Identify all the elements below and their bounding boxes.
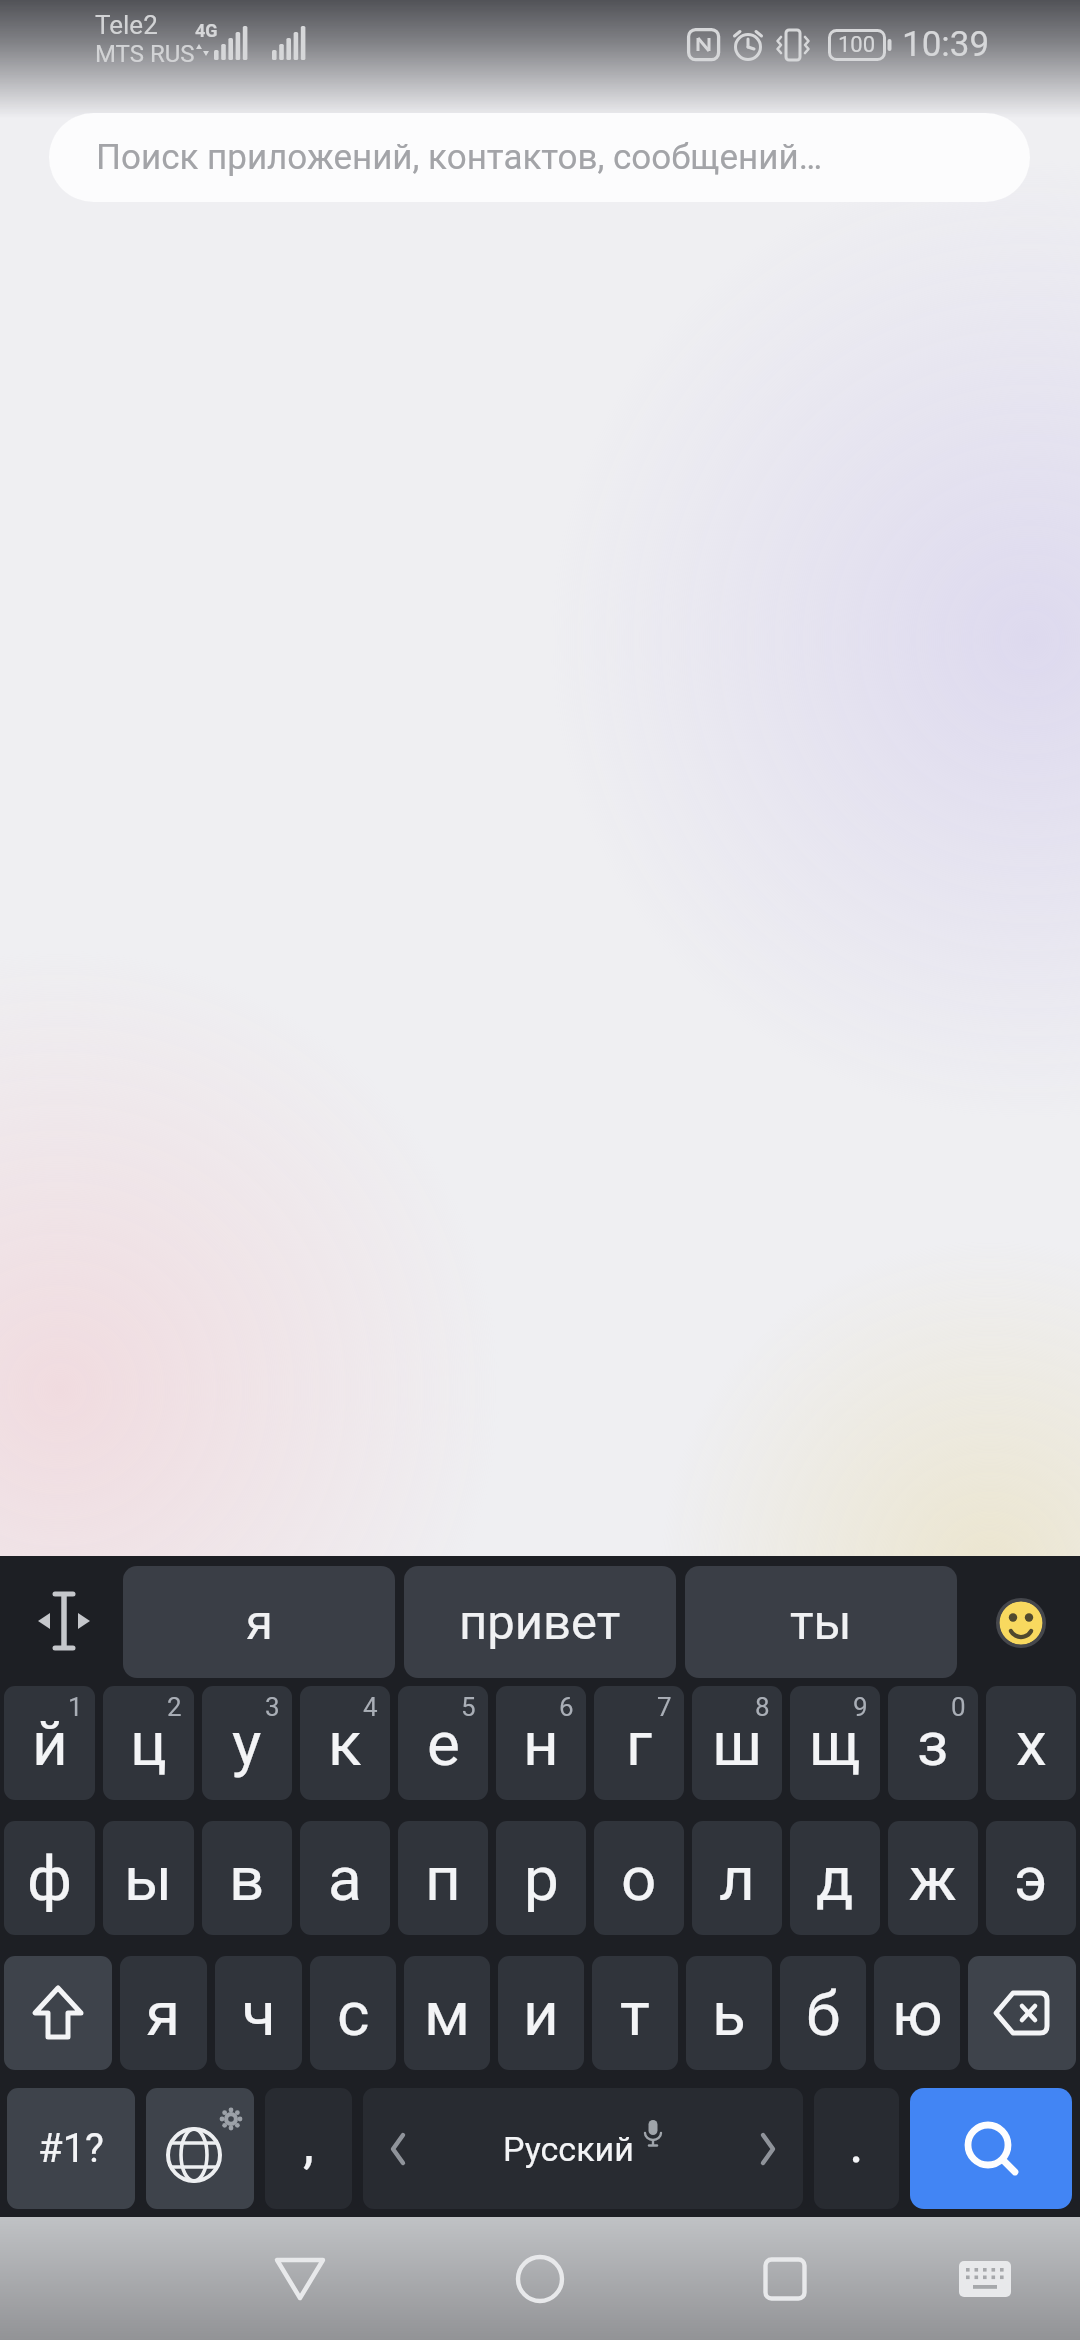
button[interactable]: е — [398, 1686, 488, 1800]
button[interactable]: Поиск приложений, контактов, сообщений… — [49, 113, 1030, 202]
staticText: . — [849, 2110, 864, 2176]
staticText: м — [424, 1977, 470, 2050]
staticText: 5 — [461, 1692, 476, 1722]
button[interactable]: ж — [888, 1821, 978, 1935]
button[interactable]: ч — [215, 1956, 302, 2070]
staticText: с — [337, 1977, 370, 2050]
button[interactable]: р — [496, 1821, 586, 1935]
staticText: привет — [459, 1594, 621, 1651]
button[interactable]: л — [692, 1821, 782, 1935]
staticText: 7 — [657, 1692, 672, 1722]
staticText: 1 — [68, 1692, 83, 1722]
button[interactable] — [968, 1956, 1076, 2070]
staticText: 0 — [951, 1692, 966, 1722]
staticText: и — [523, 1977, 559, 2050]
staticText: ч — [242, 1977, 276, 2050]
button[interactable]: м — [404, 1956, 490, 2070]
button[interactable]: а — [300, 1821, 390, 1935]
staticText: х — [1016, 1707, 1047, 1780]
staticText: 8 — [755, 1692, 770, 1722]
staticText: л — [719, 1842, 755, 1915]
button[interactable]: привет — [404, 1566, 676, 1678]
staticText: #1? — [38, 2125, 105, 2172]
button[interactable]: г — [594, 1686, 684, 1800]
button[interactable] — [515, 2254, 565, 2304]
button[interactable]: у — [202, 1686, 292, 1800]
button[interactable]: я — [120, 1956, 207, 2070]
button[interactable] — [34, 1586, 94, 1656]
staticText: ф — [27, 1842, 72, 1915]
staticText: Русский — [503, 2129, 634, 2169]
button[interactable]: д — [790, 1821, 880, 1935]
staticText: ы — [124, 1842, 173, 1915]
staticText: п — [425, 1842, 461, 1915]
button[interactable]: х — [986, 1686, 1076, 1800]
button[interactable]: о — [594, 1821, 684, 1935]
staticText: о — [621, 1842, 657, 1915]
button[interactable]: и — [498, 1956, 584, 2070]
button[interactable] — [273, 2257, 327, 2301]
button[interactable]: Русский — [363, 2088, 803, 2209]
staticText: н — [523, 1707, 559, 1780]
staticText: б — [806, 1977, 841, 2050]
button[interactable]: ш — [692, 1686, 782, 1800]
staticText: э — [1014, 1842, 1048, 1915]
staticText: 9 — [853, 1692, 868, 1722]
staticText: 10:39 — [902, 24, 990, 65]
staticText: , — [303, 2110, 315, 2176]
button[interactable]: ф — [4, 1821, 95, 1935]
button[interactable]: в — [202, 1821, 292, 1935]
button[interactable]: э — [986, 1821, 1076, 1935]
button[interactable]: к — [300, 1686, 390, 1800]
staticText: 6 — [559, 1692, 574, 1722]
staticText: 3 — [265, 1692, 280, 1722]
staticText: ты — [790, 1594, 852, 1651]
staticText: я — [246, 1594, 273, 1651]
button[interactable]: н — [496, 1686, 586, 1800]
button[interactable]: ю — [874, 1956, 960, 2070]
button[interactable]: ы — [103, 1821, 194, 1935]
staticText: в — [229, 1842, 265, 1915]
staticText: й — [32, 1707, 68, 1780]
button[interactable]: й — [4, 1686, 95, 1800]
staticText: у — [232, 1707, 262, 1780]
staticText: ж — [909, 1842, 957, 1915]
button[interactable]: , — [265, 2088, 352, 2209]
button[interactable]: з — [888, 1686, 978, 1800]
button[interactable]: б — [780, 1956, 866, 2070]
button[interactable]: ь — [686, 1956, 772, 2070]
staticText: 100 — [838, 32, 876, 58]
staticText: 4G — [195, 20, 218, 41]
button[interactable] — [910, 2088, 1072, 2209]
staticText: ц — [130, 1707, 167, 1780]
button[interactable] — [959, 2261, 1011, 2297]
button[interactable]: с — [310, 1956, 396, 2070]
button[interactable]: ты — [685, 1566, 957, 1678]
button[interactable]: т — [592, 1956, 678, 2070]
button[interactable] — [763, 2257, 807, 2301]
staticText: щ — [809, 1707, 861, 1780]
staticText: ю — [892, 1977, 943, 2050]
button[interactable]: щ — [790, 1686, 880, 1800]
staticText: е — [427, 1707, 460, 1780]
button[interactable]: ц — [103, 1686, 194, 1800]
staticText: к — [328, 1707, 362, 1780]
button[interactable] — [146, 2088, 254, 2209]
staticText: г — [626, 1707, 653, 1780]
button[interactable]: #1? — [7, 2088, 135, 2209]
staticText: 4 — [363, 1692, 378, 1722]
staticText: я — [146, 1977, 181, 2050]
staticText: ь — [712, 1977, 746, 2050]
button[interactable]: я — [123, 1566, 395, 1678]
staticText: Поиск приложений, контактов, сообщений… — [96, 137, 823, 178]
staticText: ш — [712, 1707, 763, 1780]
button[interactable] — [996, 1598, 1046, 1648]
staticText: 2 — [167, 1692, 182, 1722]
button[interactable]: п — [398, 1821, 488, 1935]
staticText: а — [328, 1842, 362, 1915]
staticText: д — [816, 1842, 854, 1915]
button[interactable]: . — [814, 2088, 899, 2209]
staticText: Tele2 — [95, 10, 158, 40]
staticText: т — [620, 1977, 650, 2050]
button[interactable] — [4, 1956, 112, 2070]
